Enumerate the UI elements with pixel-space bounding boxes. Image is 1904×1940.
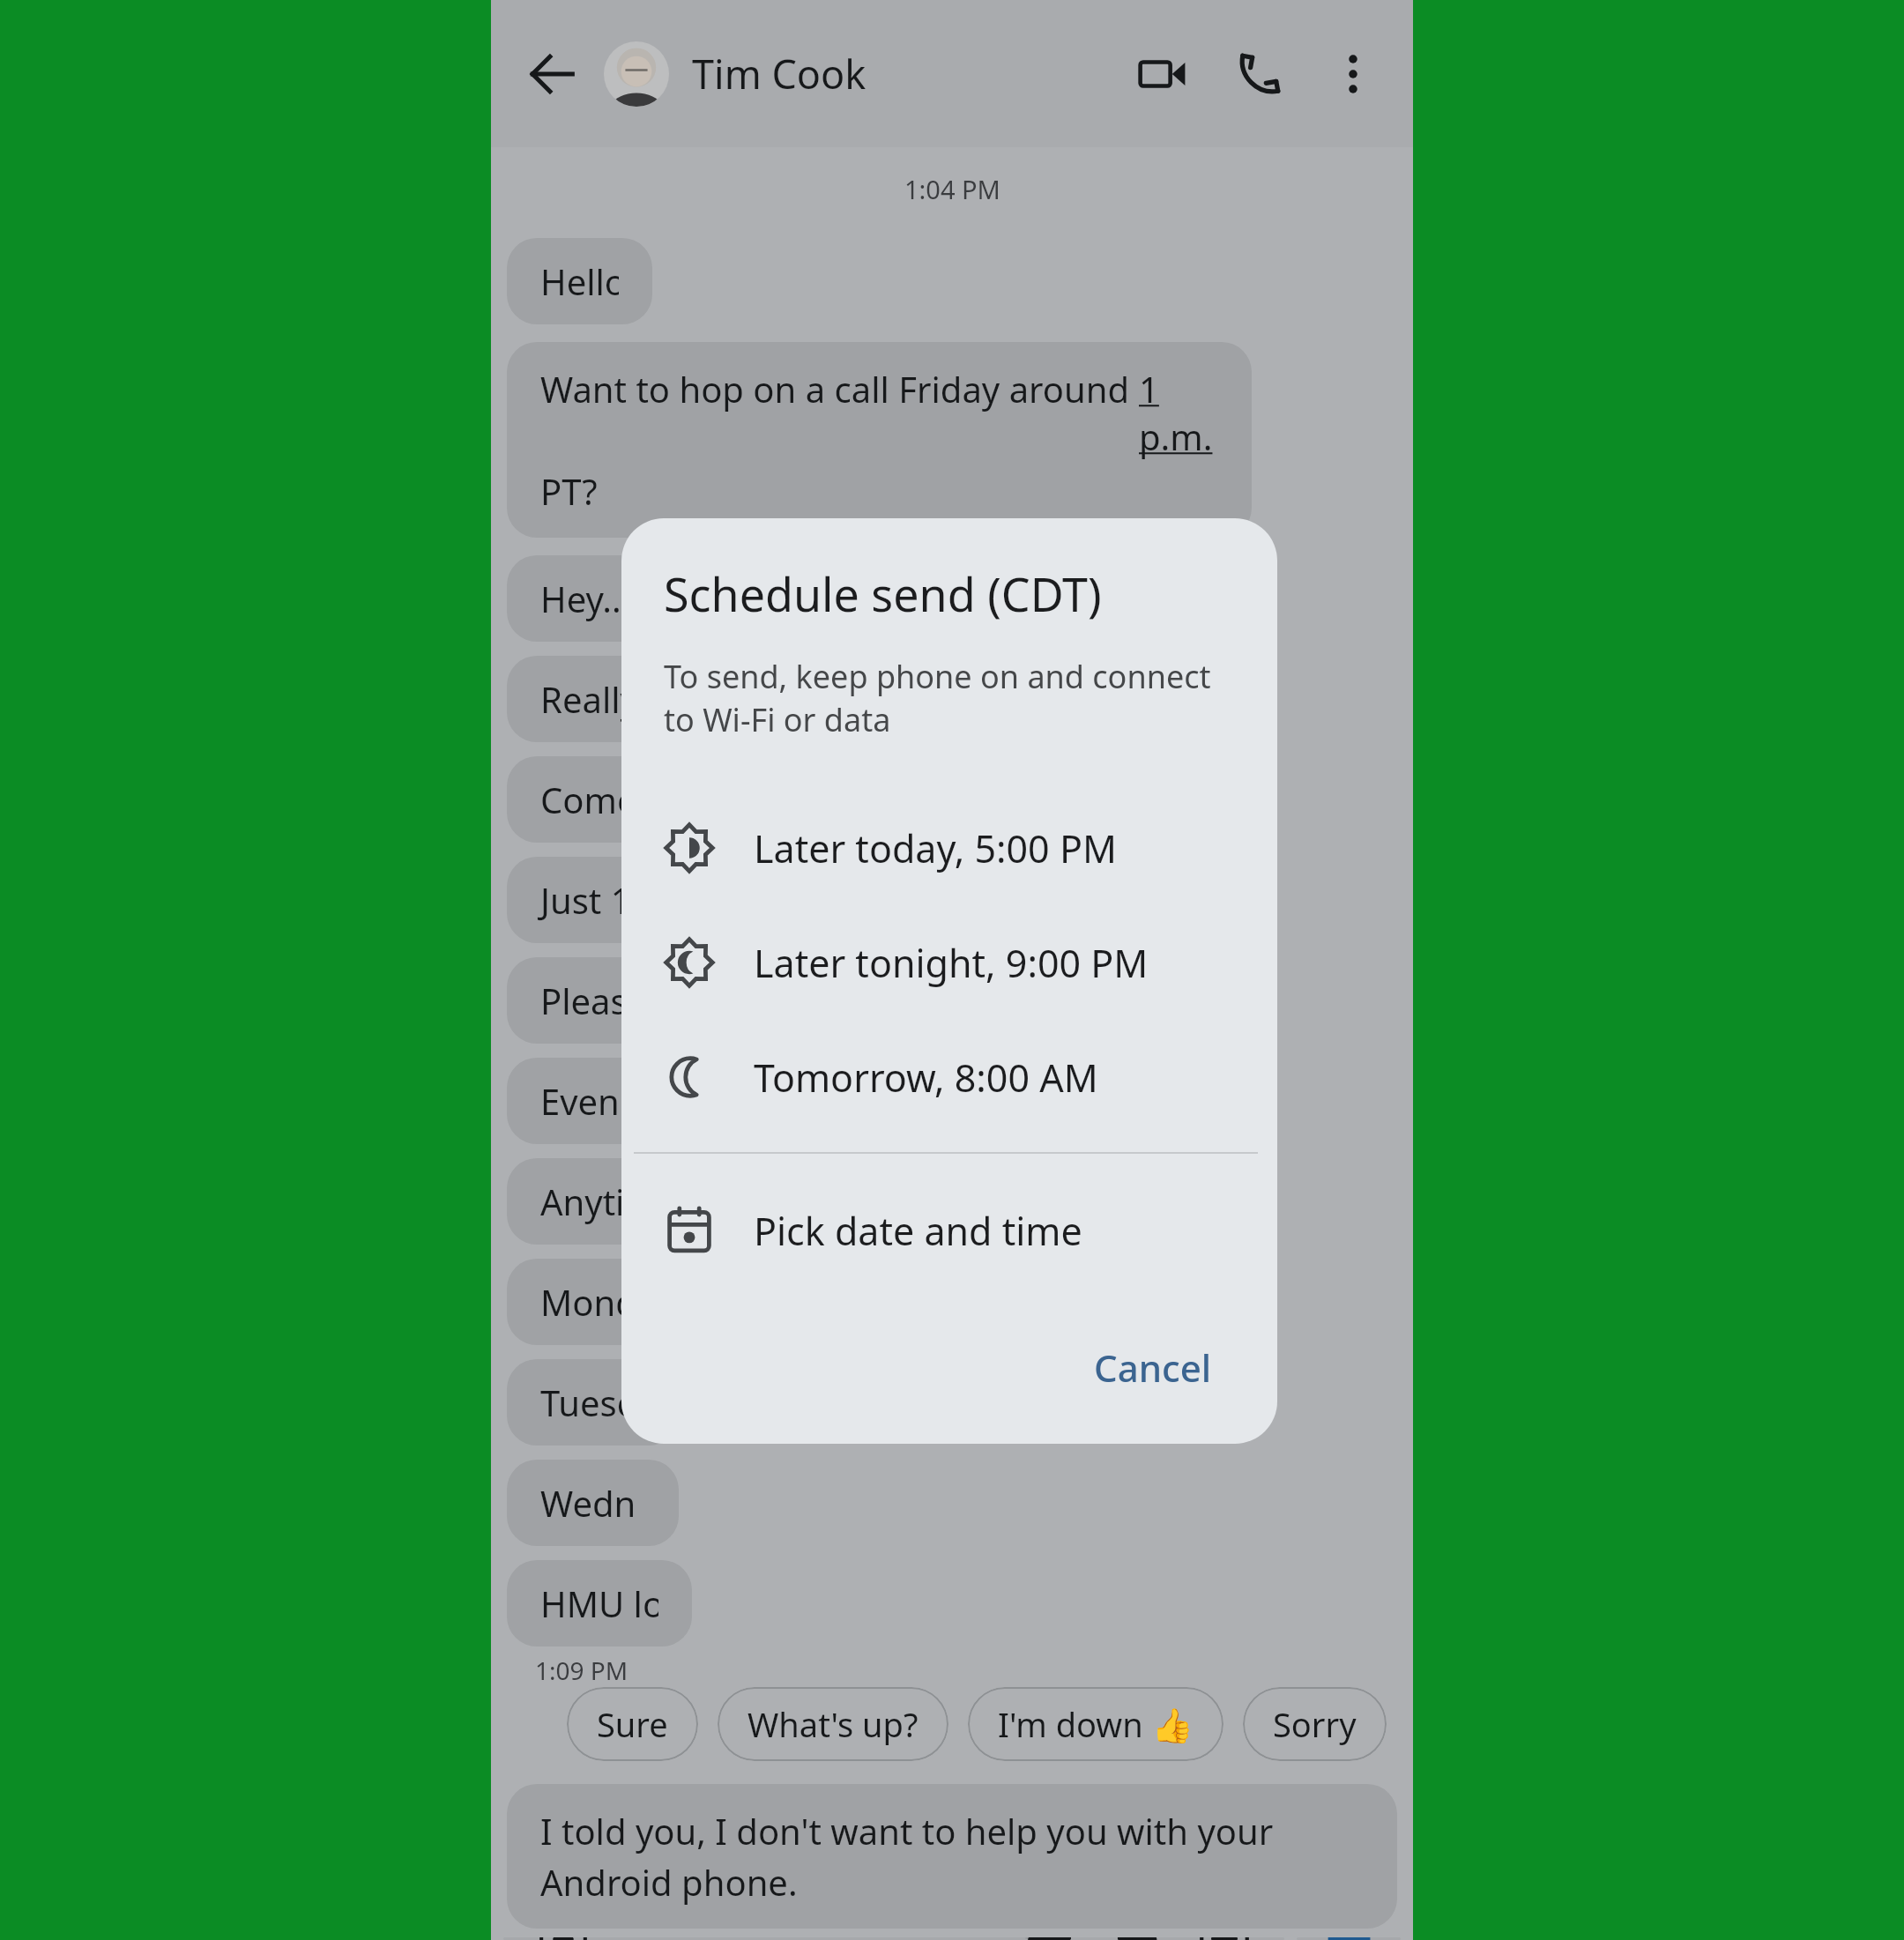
button[interactable]: Sure <box>567 1687 698 1761</box>
staticText: Later today, 5:00 PM <box>754 822 1117 874</box>
staticText: What's up? <box>747 1701 919 1747</box>
button[interactable]: Video call <box>1126 37 1200 111</box>
button[interactable]: Hello <box>507 238 652 324</box>
staticText: 1 p.m. <box>1139 365 1218 460</box>
button[interactable]: Tuesc <box>507 1359 679 1446</box>
staticText: HMU lol <box>540 1580 658 1627</box>
button[interactable]: Gallery <box>1099 1937 1173 1940</box>
staticText: 1:09 PM <box>535 1654 628 1687</box>
button[interactable]: Want to hop on a call Friday around <box>507 342 1252 538</box>
button[interactable]: HMU lol <box>507 1560 692 1646</box>
button[interactable]: I told you, I don't want to help you wit… <box>507 1784 1397 1929</box>
staticText: Come <box>540 776 637 823</box>
button[interactable]: Mond <box>507 1259 679 1345</box>
button[interactable]: Come <box>507 756 679 843</box>
staticText: PT? <box>540 467 598 515</box>
staticText: I'm down 👍 <box>998 1701 1194 1747</box>
staticText: Hello <box>540 257 619 305</box>
staticText: Hey... <box>540 575 631 622</box>
staticText: Just 1 <box>540 876 631 924</box>
staticText: Even <box>540 1077 629 1125</box>
staticText: Pleas <box>540 977 628 1024</box>
button[interactable]: Even <box>507 1058 679 1144</box>
staticText: Schedule send (CDT) <box>664 562 1102 625</box>
staticText: Sure <box>597 1701 668 1747</box>
staticText: Tim Cook <box>692 47 866 100</box>
button[interactable]: Pick date and time <box>621 1173 1277 1288</box>
button[interactable]: Hey... <box>507 555 679 642</box>
button[interactable]: Tomorrow, 8:00 AM <box>621 1020 1277 1134</box>
button[interactable]: Back <box>514 36 590 112</box>
button[interactable]: Sorry <box>1243 1687 1387 1761</box>
staticText: Cancel <box>1094 1342 1212 1393</box>
staticText: Tomorrow, 8:00 AM <box>754 1052 1098 1104</box>
button[interactable]: Really <box>507 656 679 742</box>
staticText: Sorry <box>1273 1701 1357 1747</box>
button[interactable]: Call <box>1223 37 1297 111</box>
staticText: Later tonight, 9:00 PM <box>754 937 1149 989</box>
button[interactable]: Pleas <box>507 957 679 1044</box>
button[interactable]: Later tonight, 9:00 PM <box>621 905 1277 1020</box>
button[interactable]: Wedn <box>507 1460 679 1546</box>
button[interactable]: Magic compose <box>1011 1937 1085 1940</box>
button[interactable]: Send SMS <box>1297 1937 1401 1940</box>
button[interactable]: Emoji <box>526 1937 600 1940</box>
staticText: 1:04 PM <box>904 172 1000 206</box>
button[interactable]: Just 1 <box>507 857 679 943</box>
staticText: Pick date and time <box>754 1205 1082 1257</box>
staticText: Want to hop on a call Friday around <box>540 365 1139 413</box>
staticText: Mond <box>540 1278 637 1326</box>
button[interactable]: Cancel <box>1067 1327 1238 1409</box>
button[interactable]: Later today, 5:00 PM <box>621 791 1277 905</box>
button[interactable]: I'm down 👍 <box>968 1687 1223 1761</box>
staticText: Really <box>540 675 638 723</box>
staticText: Anytin <box>540 1178 645 1225</box>
button[interactable]: What's up? <box>718 1687 948 1761</box>
staticText: Wedn <box>540 1479 636 1527</box>
staticText: Tuesc <box>540 1379 634 1426</box>
button[interactable]: More <box>1187 1937 1261 1940</box>
staticText: To send, keep phone on and connect to Wi… <box>664 655 1217 741</box>
staticText: I told you, I don't want to help you wit… <box>540 1807 1364 1906</box>
button[interactable]: Contact photo <box>604 41 669 107</box>
button[interactable]: More options <box>1316 37 1390 111</box>
button[interactable]: Anytin <box>507 1158 679 1245</box>
